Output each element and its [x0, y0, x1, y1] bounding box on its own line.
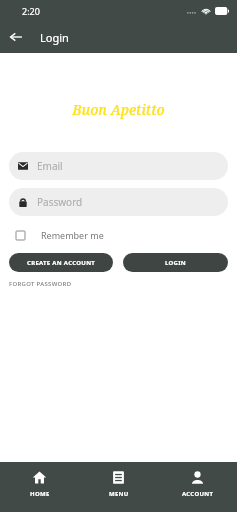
button[interactable]: FORGOT PASSWORD: [9, 280, 72, 288]
staticText: Email: [37, 159, 63, 173]
staticText: HOME: [30, 490, 50, 498]
button[interactable]: MENU: [79, 462, 158, 512]
staticText: 2:20: [22, 5, 40, 17]
button[interactable]: Remember me: [9, 224, 104, 246]
staticText: Buon Apetitto: [72, 100, 165, 119]
staticText: MENU: [109, 490, 129, 498]
button[interactable]: HOME: [0, 462, 79, 512]
button[interactable]: Email: [9, 152, 228, 180]
staticText: LOGIN: [165, 259, 187, 267]
button[interactable]: Password: [9, 188, 228, 216]
staticText: Login: [40, 30, 69, 45]
staticText: Password: [37, 195, 83, 209]
button[interactable]: ACCOUNT: [158, 462, 237, 512]
button[interactable]: Back: [0, 21, 32, 53]
staticText: FORGOT PASSWORD: [9, 280, 72, 288]
staticText: Remember me: [41, 229, 104, 241]
staticText: CREATE AN ACCOUNT: [27, 259, 96, 267]
staticText: ACCOUNT: [182, 490, 214, 498]
button[interactable]: LOGIN: [123, 253, 228, 272]
button[interactable]: CREATE AN ACCOUNT: [9, 253, 113, 272]
